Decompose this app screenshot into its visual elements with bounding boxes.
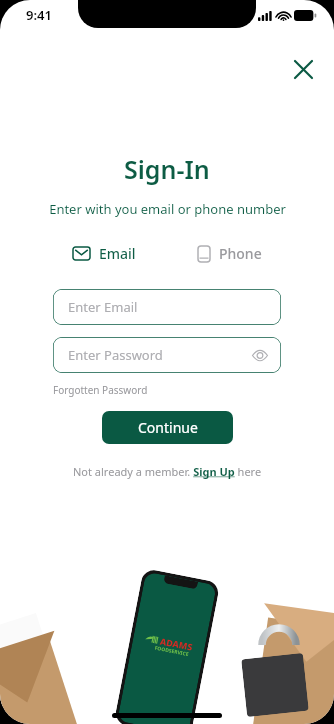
button[interactable]: Close — [286, 52, 320, 86]
button[interactable]: Enter Password — [53, 337, 281, 373]
staticText: Enter Email — [68, 298, 138, 316]
staticText: Continue — [138, 418, 198, 437]
staticText: FOODSERVICE — [154, 645, 190, 658]
staticText: ADAMS — [159, 635, 194, 653]
staticText: Email — [99, 244, 136, 263]
staticText: Enter with you email or phone number — [49, 200, 286, 218]
button[interactable]: Forgotten Password — [53, 383, 148, 397]
button[interactable]: Enter Email — [53, 289, 281, 325]
staticText: Sign-In — [124, 152, 210, 186]
staticText: Enter Password — [68, 346, 163, 364]
staticText: Phone — [219, 244, 262, 263]
staticText: Not already a member. Sign Up here — [73, 464, 262, 479]
button[interactable]: Continue — [102, 411, 233, 444]
button[interactable]: Phone — [192, 240, 268, 267]
button[interactable]: Email — [67, 240, 142, 267]
button[interactable]: Show password — [247, 342, 273, 368]
staticText: 9:41 — [26, 6, 52, 24]
button[interactable]: Not already a member. Sign Up here — [73, 464, 262, 479]
